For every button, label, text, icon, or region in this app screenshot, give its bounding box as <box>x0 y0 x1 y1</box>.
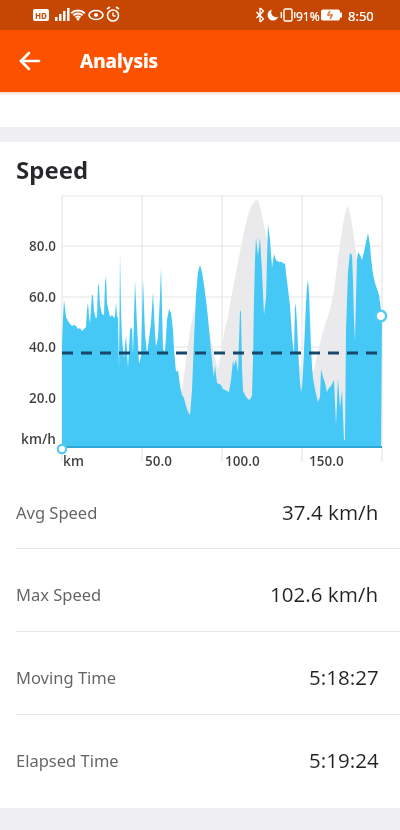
staticText: 20.0 <box>29 389 56 407</box>
button[interactable] <box>12 43 48 79</box>
staticText: Analysis <box>80 48 159 74</box>
staticText: 150.0 <box>309 452 344 470</box>
staticText: Elapsed Time <box>16 749 119 771</box>
staticText: Moving Time <box>16 666 117 688</box>
staticText: 100.0 <box>225 452 260 470</box>
staticText: 5:18:27 <box>309 663 379 691</box>
staticText: 102.6 km/h <box>270 580 379 608</box>
staticText: Avg Speed <box>16 501 98 523</box>
staticText: 60.0 <box>29 288 56 306</box>
staticText: 40.0 <box>29 338 56 356</box>
staticText: 5:19:24 <box>309 746 379 774</box>
staticText: 50.0 <box>145 452 172 470</box>
staticText: km/h <box>21 430 56 448</box>
button[interactable]: Max Speed <box>0 564 400 624</box>
button[interactable]: Avg Speed <box>0 482 400 542</box>
staticText: 37.4 km/h <box>282 498 379 526</box>
staticText: 91% <box>296 8 320 24</box>
staticText: km <box>63 452 84 470</box>
staticText: HD <box>35 10 47 21</box>
staticText: Speed <box>16 153 89 186</box>
staticText: Max Speed <box>16 583 102 605</box>
button[interactable]: Moving Time <box>0 647 400 707</box>
staticText: 8:50 <box>348 7 374 25</box>
staticText: 80.0 <box>29 237 56 255</box>
button[interactable]: Elapsed Time <box>0 730 400 790</box>
